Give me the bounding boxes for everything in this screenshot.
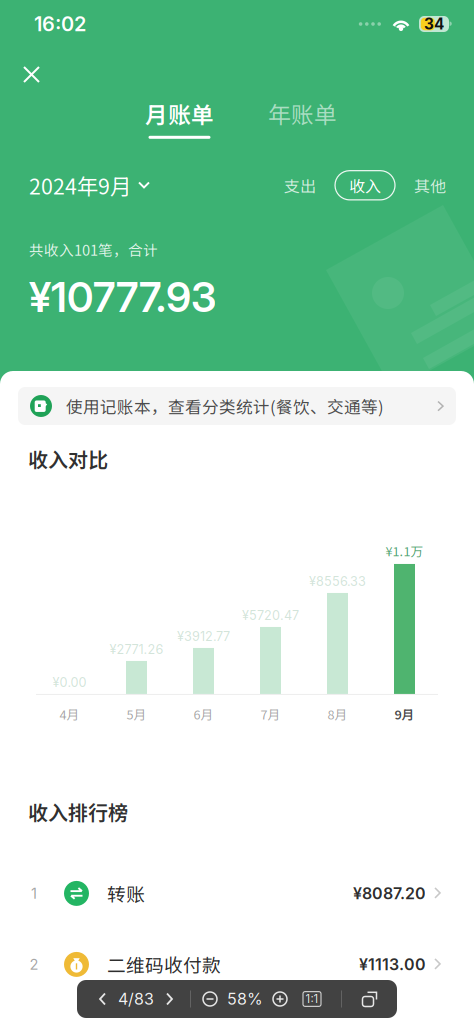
staticText: ¥1.1万 [385,542,423,560]
staticText: 2 [29,955,38,973]
button[interactable]: 1 [0,858,474,929]
staticText: ¥2771.26 [109,642,163,657]
button[interactable]: 旋转 [353,988,387,1010]
staticText: 其他 [414,174,446,197]
staticText: 收入对比 [28,444,108,473]
button[interactable]: 实际大小 [294,992,330,1006]
button[interactable]: 缩小 [196,988,224,1010]
staticText: 收入排行榜 [28,797,128,826]
staticText: 共收入101笔，合计 [29,239,158,260]
staticText: 58% [227,989,263,1009]
staticText: 使用记账本，查看分类统计(餐饮、交通等) [66,394,384,418]
staticText: ¥8556.33 [309,574,366,589]
staticText: 转账 [107,880,145,907]
staticText: ¥8087.20 [353,884,426,903]
staticText: 支出 [284,174,316,197]
staticText: 16:02 [34,12,86,36]
button[interactable]: 收入 [327,171,403,200]
button[interactable]: 年账单 [268,97,337,139]
staticText: 9月 [394,705,414,723]
staticText: 二维码收付款 [107,951,221,978]
button[interactable]: 下一页 [154,991,185,1006]
staticText: 2024年9月 [29,170,131,201]
staticText: ¥0.00 [52,675,86,690]
staticText: 收入 [349,174,381,197]
staticText: ¥1113.00 [359,955,426,974]
staticText: 6月 [193,705,213,723]
staticText: 1 [31,884,37,902]
button[interactable]: 放大 [266,988,294,1010]
button[interactable]: 关闭 [0,58,57,93]
staticText: 1:1 [305,992,318,1006]
button[interactable]: 2024年9月 [29,164,150,207]
staticText: 月账单 [145,97,214,130]
button[interactable]: 支出 [273,169,327,202]
staticText: 5月 [126,705,146,723]
staticText: ¥5720.47 [242,608,299,623]
staticText: 7月 [260,705,280,723]
button[interactable]: 2 [0,929,474,1000]
staticText: ¥10777.93 [29,272,216,322]
staticText: 8月 [327,705,347,723]
button[interactable]: 月账单 [145,97,214,139]
staticText: 34 [424,15,444,33]
staticText: 年账单 [268,97,337,130]
staticText: 4/83 [118,989,154,1009]
button[interactable]: 使用记账本，查看分类统计(餐饮、交通等) [18,387,456,425]
button[interactable]: 上一页 [87,991,118,1006]
staticText: ¥3912.77 [177,629,230,644]
staticText: 4月 [59,705,79,723]
button[interactable]: 其他 [403,169,457,202]
